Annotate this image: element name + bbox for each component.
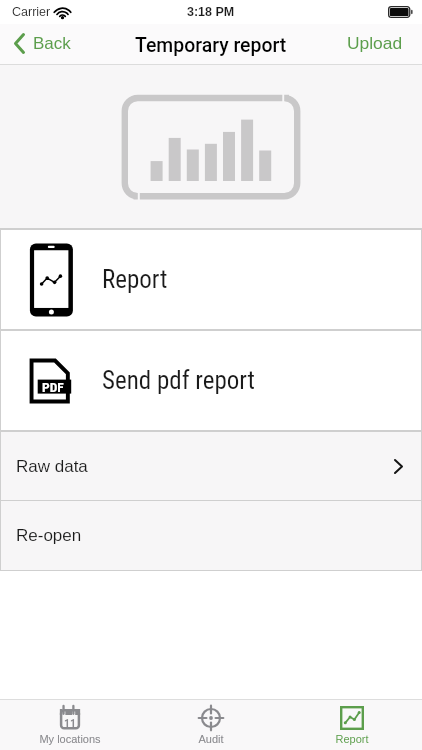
staticText: PDF [42,379,64,395]
staticText: Back [33,34,71,53]
button[interactable]: Re-open [1,501,421,570]
staticText: Re-open [16,526,82,545]
button[interactable]: Upload [337,29,422,60]
button[interactable]: Back [0,28,81,61]
button[interactable]: Raw data [1,432,421,500]
staticText: Report [102,265,168,294]
staticText: 11 [64,717,77,731]
staticText: 3:18 PM [187,5,235,19]
staticText: Send pdf report [102,366,255,395]
staticText: Audit [198,733,224,745]
button[interactable]: Report [1,230,421,329]
button[interactable]: 11 [0,700,140,750]
button[interactable]: Report [281,700,422,750]
staticText: Temporary report [135,34,287,57]
staticText: Report [335,733,369,745]
button[interactable]: Audit [140,700,281,750]
staticText: Raw data [16,457,88,476]
button[interactable]: PDF [1,331,421,430]
staticText: My locations [39,733,101,745]
staticText: Carrier [12,5,51,19]
